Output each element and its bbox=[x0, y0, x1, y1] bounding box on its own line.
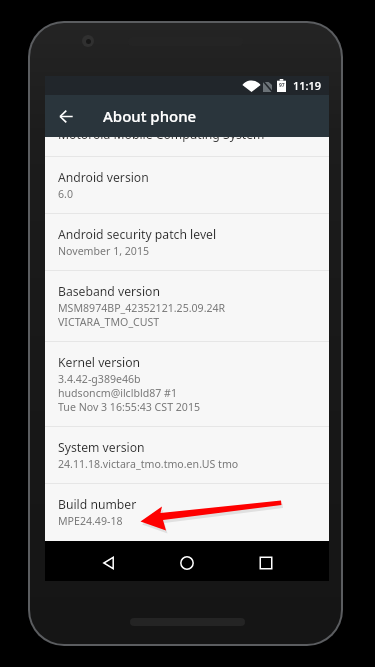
staticText: About phone bbox=[103, 106, 197, 126]
button[interactable]: Baseband version bbox=[45, 271, 329, 341]
staticText: Android security patch level bbox=[58, 226, 217, 243]
staticText: November 1, 2015 bbox=[58, 244, 150, 258]
button[interactable]: System version bbox=[45, 427, 329, 483]
button[interactable]: Android version bbox=[45, 157, 329, 213]
button[interactable]: Build number bbox=[45, 484, 329, 540]
staticText: Build number bbox=[58, 496, 137, 513]
staticText: System version bbox=[58, 439, 145, 456]
staticText: VICTARA_TMO_CUST bbox=[58, 315, 160, 329]
staticText: 97 bbox=[279, 82, 285, 89]
staticText: Baseband version bbox=[58, 283, 160, 300]
staticText: MPE24.49-18 bbox=[58, 514, 123, 528]
staticText: 24.11.18.victara_tmo.tmo.en.US tmo bbox=[58, 457, 239, 471]
staticText: Motorola Mobile Computing System bbox=[58, 126, 265, 143]
staticText: hudsoncm@ilclbld87 #1 bbox=[58, 386, 177, 400]
staticText: 3.4.42-g389e46b bbox=[58, 372, 141, 386]
staticText: 11:19 bbox=[293, 78, 322, 93]
staticText: MSM8974BP_42352121.25.09.24R bbox=[58, 301, 226, 315]
button[interactable]: Home bbox=[169, 545, 205, 581]
staticText: Android version bbox=[58, 169, 149, 186]
staticText: Kernel version bbox=[58, 354, 141, 371]
button[interactable]: Android security patch level bbox=[45, 214, 329, 270]
button[interactable]: Back bbox=[91, 545, 127, 581]
staticText: Tue Nov 3 16:55:43 CST 2015 bbox=[58, 400, 201, 414]
staticText: 6.0 bbox=[58, 187, 73, 201]
button[interactable]: Kernel version bbox=[45, 342, 329, 426]
button[interactable]: Recents bbox=[248, 545, 284, 581]
button[interactable]: Back bbox=[45, 95, 87, 137]
